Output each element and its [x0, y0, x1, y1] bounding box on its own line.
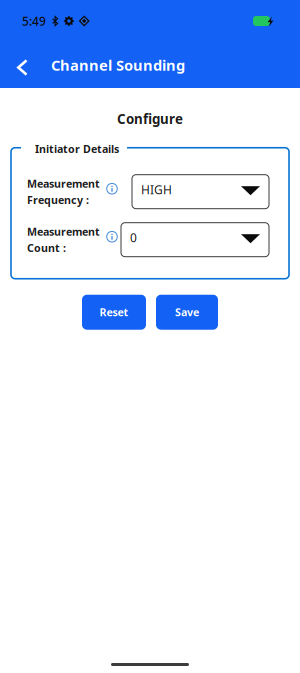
staticText: Reset	[99, 305, 128, 319]
staticText: Frequency :	[27, 193, 89, 207]
button[interactable]: HIGH	[132, 175, 269, 209]
staticText: Measurement	[27, 176, 100, 191]
staticText: Channel Sounding	[51, 55, 185, 75]
staticText: Save	[175, 305, 199, 319]
button[interactable]: Save	[156, 295, 218, 330]
staticText: Measurement	[27, 224, 100, 239]
staticText: 5:49	[22, 13, 46, 29]
staticText: Configure	[117, 110, 183, 128]
button[interactable]: 0	[121, 223, 269, 257]
staticText: Count :	[27, 241, 66, 255]
staticText: 0	[130, 230, 137, 246]
button[interactable]: Back	[4, 43, 40, 87]
staticText: HIGH	[141, 182, 172, 198]
staticText: Initiator Details	[35, 142, 119, 156]
button[interactable]: Reset	[82, 295, 146, 330]
